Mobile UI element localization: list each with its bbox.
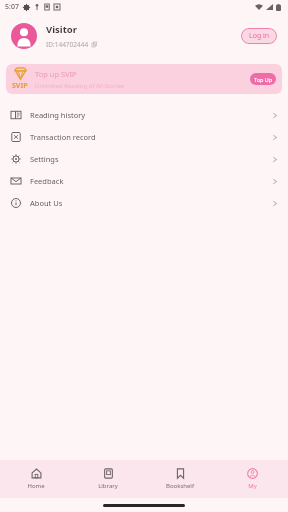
staticText: Visitor: [46, 23, 77, 36]
button[interactable]: Library: [72, 460, 144, 498]
staticText: About Us: [30, 198, 63, 208]
staticText: Library: [98, 482, 118, 490]
staticText: Unlimited Reading of All Stories: [35, 82, 124, 90]
staticText: Feedback: [30, 176, 64, 186]
staticText: Transaction record: [30, 132, 96, 142]
button[interactable]: Transaction record: [0, 126, 288, 148]
button[interactable]: Settings: [0, 148, 288, 170]
staticText: ID:144702444: [46, 40, 89, 49]
button[interactable]: Top Up: [250, 73, 276, 85]
button[interactable]: Bookshelf: [144, 460, 216, 498]
button[interactable]: Feedback: [0, 170, 288, 192]
staticText: Bookshelf: [166, 482, 194, 490]
staticText: Top up SVIP: [35, 69, 77, 79]
button[interactable]: Reading history: [0, 104, 288, 126]
staticText: Reading history: [30, 110, 86, 120]
button[interactable]: SVIP: [6, 64, 282, 94]
staticText: 5:07: [5, 2, 19, 12]
staticText: SVIP: [12, 81, 28, 91]
button[interactable]: My: [216, 460, 288, 498]
staticText: My: [248, 482, 257, 490]
button[interactable]: Log in: [241, 28, 277, 44]
staticText: Top Up: [254, 76, 273, 83]
button[interactable]: [11, 23, 37, 49]
staticText: Settings: [30, 154, 59, 164]
button[interactable]: Home: [0, 460, 72, 498]
staticText: Log in: [249, 31, 270, 41]
staticText: Home: [27, 482, 45, 490]
button[interactable]: About Us: [0, 192, 288, 214]
button[interactable]: ID:144702444: [46, 40, 97, 49]
